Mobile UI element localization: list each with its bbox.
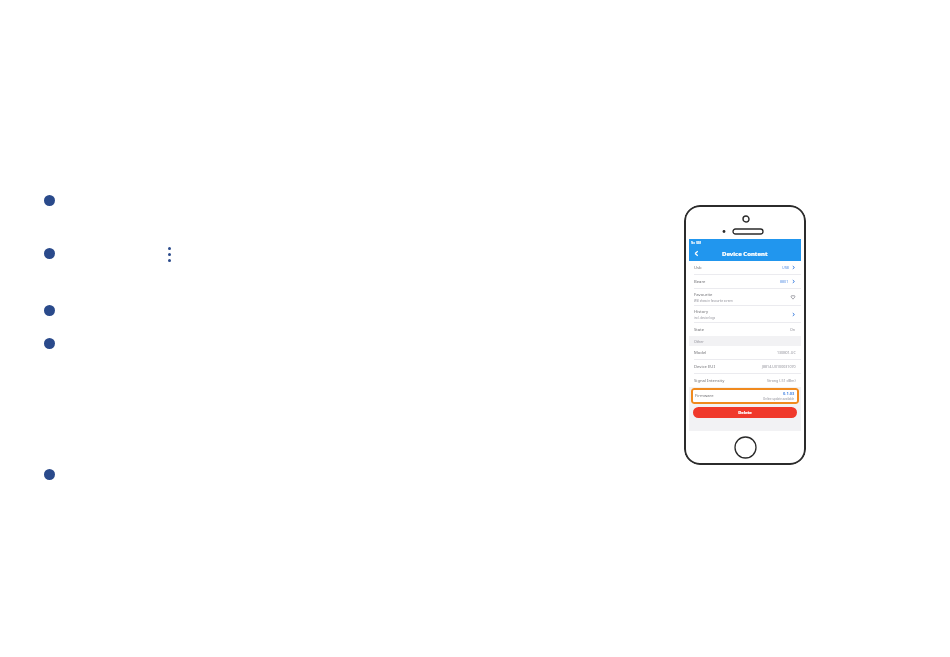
staticText: Signal Intensity bbox=[694, 378, 725, 384]
staticText: J8814-U0100031070 bbox=[762, 364, 796, 369]
button[interactable]: Usb bbox=[689, 261, 801, 274]
button[interactable]: State bbox=[689, 323, 801, 336]
staticText: Delete bbox=[738, 410, 752, 416]
button[interactable]: Model bbox=[689, 346, 801, 359]
button[interactable]: Beare bbox=[689, 275, 801, 288]
staticText: Other bbox=[694, 339, 704, 344]
button[interactable]: More options bbox=[163, 243, 175, 265]
staticText: Will show in favourite screen bbox=[694, 299, 733, 303]
staticText: Model bbox=[694, 350, 707, 356]
staticText: Strong (-51 dBm) bbox=[767, 378, 796, 383]
button[interactable]: Delete bbox=[693, 407, 797, 418]
button[interactable]: Back bbox=[691, 248, 702, 259]
staticText: Device EUI bbox=[694, 364, 715, 370]
staticText: On bbox=[790, 327, 796, 332]
button[interactable]: Favourite bbox=[689, 289, 801, 305]
staticText: Beare bbox=[694, 279, 706, 285]
staticText: Favourite bbox=[694, 292, 713, 298]
staticText: State bbox=[694, 327, 705, 333]
staticText: No SIM bbox=[691, 241, 702, 245]
staticText: incl. device logs bbox=[694, 316, 716, 320]
staticText: USB bbox=[782, 265, 789, 270]
staticText: 0.1.03 bbox=[783, 391, 795, 396]
button[interactable]: Device EUI bbox=[689, 360, 801, 373]
staticText: Device Content bbox=[722, 250, 768, 258]
staticText: 8801 bbox=[780, 279, 789, 284]
button[interactable]: Firmware bbox=[691, 388, 799, 404]
staticText: Online update available bbox=[763, 397, 795, 401]
button[interactable]: Signal Intensity bbox=[689, 374, 801, 387]
button[interactable]: Home bbox=[734, 436, 757, 459]
staticText: 130B01-UC bbox=[777, 350, 796, 355]
staticText: Firmware bbox=[695, 393, 714, 399]
staticText: Usb bbox=[694, 265, 702, 271]
staticText: History bbox=[694, 309, 709, 315]
button[interactable]: History bbox=[689, 306, 801, 322]
